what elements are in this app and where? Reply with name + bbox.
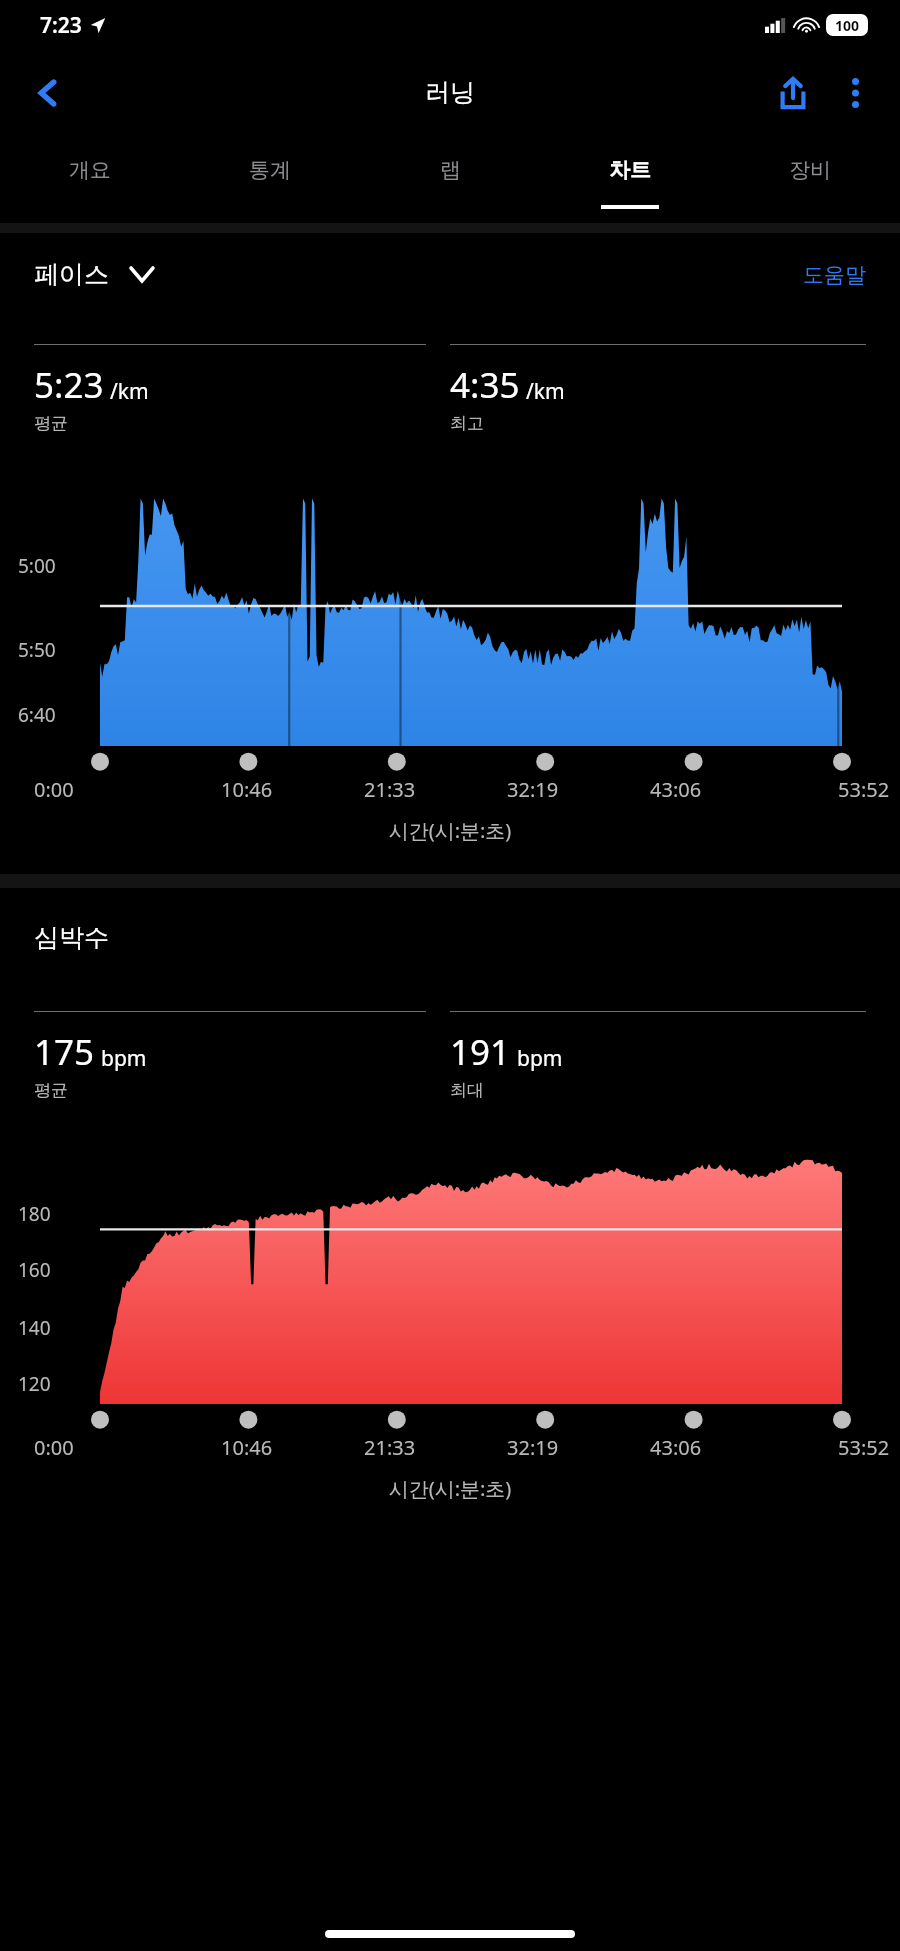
staticText: 5:00 — [18, 553, 56, 579]
staticText: /km — [110, 377, 149, 406]
button[interactable]: 차트 — [540, 135, 720, 223]
staticText: 5:23 — [34, 361, 104, 409]
staticText: 랩 — [440, 157, 461, 183]
staticText: 43:06 — [650, 1434, 702, 1461]
button[interactable]: More options — [824, 62, 886, 124]
staticText: 0:00 — [34, 1434, 74, 1461]
staticText: 21:33 — [364, 776, 416, 803]
staticText: 차트 — [609, 157, 651, 183]
staticText: 53:52 — [838, 1434, 890, 1461]
staticText: 러닝 — [425, 77, 475, 108]
staticText: 140 — [18, 1315, 51, 1341]
button[interactable]: 통계 — [180, 135, 360, 223]
staticText: 최고 — [450, 413, 484, 434]
staticText: 평균 — [34, 413, 68, 434]
staticText: 4:35 — [450, 361, 520, 409]
button[interactable]: 랩 — [360, 135, 540, 223]
staticText: 장비 — [789, 157, 831, 183]
staticText: 160 — [18, 1257, 51, 1283]
button[interactable]: 장비 — [720, 135, 900, 223]
staticText: 43:06 — [650, 776, 702, 803]
staticText: 최대 — [450, 1080, 484, 1101]
staticText: 191 — [450, 1028, 511, 1076]
staticText: /km — [526, 377, 565, 406]
staticText: 53:52 — [838, 776, 890, 803]
staticText: 평균 — [34, 1080, 68, 1101]
staticText: 시간(시:분:초) — [0, 817, 900, 844]
staticText: 7:23 — [40, 11, 82, 40]
staticText: bpm — [101, 1044, 147, 1073]
staticText: 32:19 — [507, 1434, 559, 1461]
staticText: 175 — [34, 1028, 95, 1076]
staticText: 심박수 — [34, 922, 109, 953]
button[interactable]: Back — [18, 63, 78, 123]
staticText: 10:46 — [221, 1434, 273, 1461]
staticText: 120 — [18, 1371, 51, 1397]
staticText: 0:00 — [34, 776, 74, 803]
staticText: 32:19 — [507, 776, 559, 803]
button[interactable]: Share — [762, 62, 824, 124]
button[interactable]: 도움말 — [803, 262, 866, 288]
staticText: 180 — [18, 1201, 51, 1227]
staticText: 21:33 — [364, 1434, 416, 1461]
staticText: 통계 — [249, 157, 291, 183]
button[interactable]: 페이스 — [34, 259, 153, 290]
staticText: 시간(시:분:초) — [0, 1475, 900, 1502]
staticText: 100 — [835, 16, 860, 35]
staticText: 도움말 — [803, 262, 866, 288]
staticText: 페이스 — [34, 259, 109, 290]
staticText: 6:40 — [18, 702, 56, 728]
button[interactable]: 개요 — [0, 135, 180, 223]
staticText: bpm — [517, 1044, 563, 1073]
staticText: 5:50 — [18, 637, 56, 663]
staticText: 개요 — [69, 157, 111, 183]
staticText: 10:46 — [221, 776, 273, 803]
